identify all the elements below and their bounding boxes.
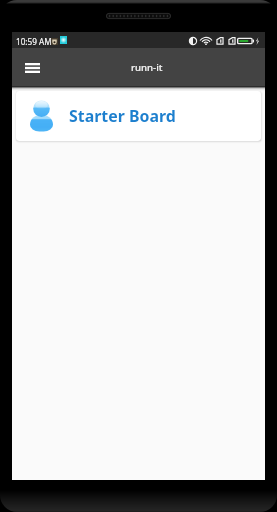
staticText: Starter Board (69, 105, 176, 127)
staticText: runn-it (131, 61, 163, 74)
staticText: 10:59 AM (16, 36, 52, 47)
button[interactable]: Starter Board (16, 91, 261, 141)
button[interactable]: Open navigation menu (19, 55, 45, 81)
